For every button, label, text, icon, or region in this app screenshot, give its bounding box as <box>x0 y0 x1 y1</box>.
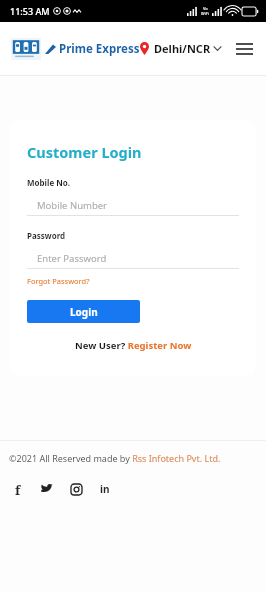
staticText: New User? Register Now <box>75 339 192 352</box>
staticText: Enter Password <box>37 252 107 265</box>
button[interactable]: Mobile Number <box>27 195 239 216</box>
staticText: 11:53 AM <box>10 5 50 17</box>
button[interactable]: Facebook <box>10 481 26 497</box>
staticText: Forgot Password? <box>27 276 90 286</box>
button[interactable]: Enter Password <box>27 248 239 269</box>
button[interactable]: Open menu <box>233 38 255 60</box>
staticText: Mobile No. <box>27 177 70 188</box>
staticText: Password <box>27 230 66 241</box>
staticText: Vo <box>203 6 208 11</box>
staticText: ©2021 All Reserved made by Rss Infotech … <box>9 452 221 464</box>
staticText: Mobile Number <box>37 199 108 212</box>
staticText: f <box>15 481 21 497</box>
staticText: Delhi/NCR <box>154 41 211 56</box>
staticText: Login <box>70 305 98 319</box>
staticText: Prime Express <box>59 41 140 57</box>
button[interactable]: LinkedIn <box>97 481 113 497</box>
staticText: WiFi <box>201 11 209 16</box>
button[interactable]: Twitter <box>39 481 55 497</box>
button[interactable]: Delhi/NCR <box>140 41 221 56</box>
staticText: Customer Login <box>27 142 142 162</box>
button[interactable]: New User? Register Now <box>75 339 192 352</box>
button[interactable]: Instagram <box>68 481 84 497</box>
staticText: in <box>100 482 110 496</box>
button[interactable]: Forgot Password? <box>27 276 90 286</box>
button[interactable]: Prime Express <box>11 38 140 60</box>
button[interactable]: Login <box>27 300 140 323</box>
